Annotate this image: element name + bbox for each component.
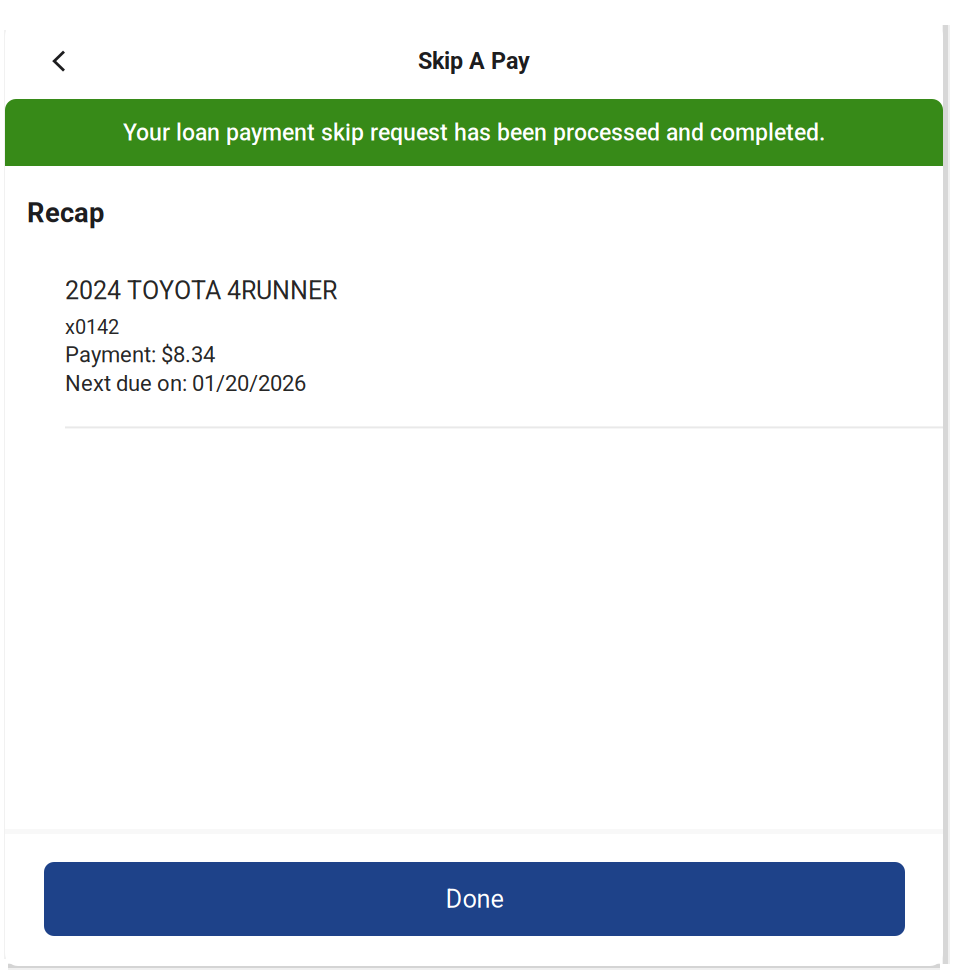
staticText: x0142 (65, 315, 119, 339)
staticText: Payment: $8.34 (65, 342, 215, 368)
staticText: 2024 TOYOTA 4RUNNER (65, 276, 337, 305)
staticText: Skip A Pay (418, 47, 530, 75)
staticText: Your loan payment skip request has been … (123, 119, 825, 146)
staticText: Recap (27, 197, 104, 229)
button[interactable]: Done (44, 862, 905, 936)
staticText: Next due on: 01/20/2026 (65, 371, 306, 396)
staticText: Done (445, 884, 503, 914)
button[interactable]: Back (26, 29, 92, 93)
